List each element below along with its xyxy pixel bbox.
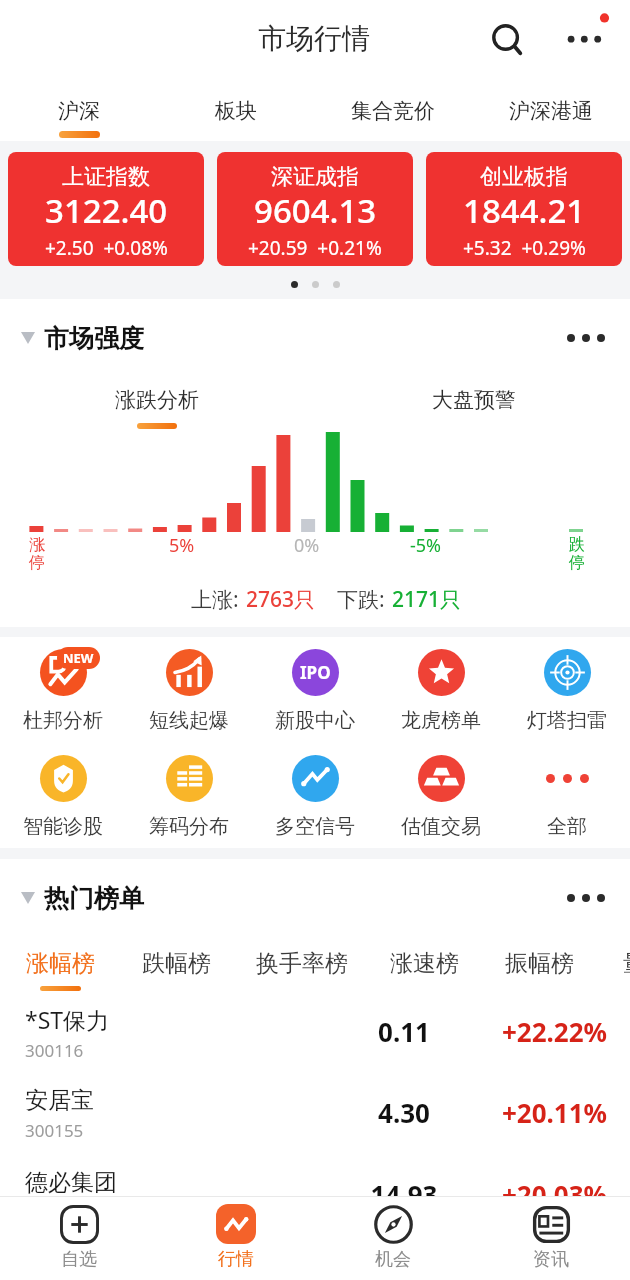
staticText: 市场强度 <box>44 323 144 354</box>
button[interactable]: 沪深港通 <box>472 78 630 141</box>
button[interactable]: 龙虎榜单 <box>378 649 504 733</box>
button[interactable]: 资讯 <box>472 1197 630 1280</box>
button[interactable]: 涨速榜 <box>387 928 462 993</box>
staticText: 涨跌分析 <box>115 387 199 413</box>
staticText: 多空信号 <box>275 814 355 839</box>
button[interactable]: 灯塔扫雷 <box>504 649 630 733</box>
staticText: 大盘预警 <box>432 387 516 413</box>
staticText: 德必集团 <box>25 1168 117 1197</box>
button[interactable]: 量 <box>620 928 630 993</box>
staticText: 行情 <box>218 1248 254 1271</box>
staticText: 跌 停 <box>569 535 585 573</box>
staticText: 沪深 <box>58 98 100 124</box>
button[interactable]: 板块 <box>157 78 314 141</box>
button[interactable]: More options <box>564 316 608 360</box>
staticText: 4.30 <box>339 1095 469 1130</box>
staticText: 0% <box>294 533 320 558</box>
staticText: 资讯 <box>533 1248 569 1271</box>
staticText: 市场行情 <box>258 21 370 56</box>
button[interactable]: 筹码分布 <box>126 755 252 839</box>
button[interactable]: IPO <box>252 649 378 733</box>
staticText: 涨幅榜 <box>26 949 95 978</box>
button[interactable]: 深证成指 <box>217 152 413 266</box>
staticText: 上涨: <box>191 585 239 611</box>
button[interactable]: More <box>550 10 612 66</box>
staticText: 短线起爆 <box>149 708 229 733</box>
button[interactable]: 涨幅榜 <box>23 928 98 993</box>
button[interactable]: 沪深 <box>0 78 157 141</box>
button[interactable]: *ST保力 <box>0 993 630 1073</box>
staticText: 5% <box>169 533 195 558</box>
staticText: 创业板指 <box>480 163 568 191</box>
staticText: 上证指数 <box>62 163 150 191</box>
button[interactable]: More options <box>564 876 608 920</box>
button[interactable]: 德必集团 <box>0 1155 630 1237</box>
staticText: 自选 <box>61 1248 97 1271</box>
staticText: 深证成指 <box>271 163 359 191</box>
staticText: 振幅榜 <box>505 949 574 978</box>
staticText: 2763只 <box>246 585 316 611</box>
button[interactable]: 换手率榜 <box>253 928 351 993</box>
button[interactable]: 多空信号 <box>252 755 378 839</box>
staticText: 9604.13 <box>254 188 377 233</box>
staticText: NEW <box>63 649 94 667</box>
staticText: 全部 <box>547 814 587 839</box>
button[interactable]: 机会 <box>314 1197 472 1280</box>
staticText: 机会 <box>375 1248 411 1271</box>
staticText: 杜邦分析 <box>23 708 103 733</box>
button[interactable]: 集合竞价 <box>314 78 472 141</box>
button[interactable]: NEW <box>0 649 126 733</box>
staticText: 估值交易 <box>401 814 481 839</box>
staticText: 下跌: <box>337 585 385 611</box>
button[interactable]: 短线起爆 <box>126 649 252 733</box>
staticText: 热门榜单 <box>44 883 144 914</box>
staticText: IPO <box>300 661 331 684</box>
staticText: 龙虎榜单 <box>401 708 481 733</box>
staticText: +20.59 +0.21% <box>248 235 382 261</box>
staticText: -5% <box>410 533 442 558</box>
staticText: 涨速榜 <box>390 949 459 978</box>
button[interactable]: 自选 <box>0 1197 157 1280</box>
staticText: 板块 <box>215 98 257 124</box>
staticText: +22.22% <box>455 1014 607 1049</box>
staticText: 300947 <box>25 1201 84 1224</box>
staticText: +20.03% <box>455 1177 607 1212</box>
button[interactable]: Search <box>478 8 534 64</box>
staticText: 14.93 <box>339 1177 469 1212</box>
staticText: 3122.40 <box>45 188 168 233</box>
button[interactable]: 涨跌分析 <box>115 387 199 413</box>
staticText: 智能诊股 <box>23 814 103 839</box>
button[interactable]: 跌幅榜 <box>139 928 214 993</box>
staticText: 沪深港通 <box>509 98 593 124</box>
staticText: +5.32 +0.29% <box>463 235 586 261</box>
staticText: 量 <box>623 949 630 978</box>
staticText: 换手率榜 <box>256 949 348 978</box>
staticText: 300155 <box>25 1119 84 1142</box>
button[interactable]: 创业板指 <box>426 152 622 266</box>
staticText: 涨 停 <box>29 535 45 573</box>
button[interactable]: 全部 <box>504 755 630 839</box>
staticText: 灯塔扫雷 <box>527 708 607 733</box>
staticText: +2.50 +0.08% <box>45 235 168 261</box>
staticText: 跌幅榜 <box>142 949 211 978</box>
staticText: 新股中心 <box>275 708 355 733</box>
button[interactable]: 大盘预警 <box>432 387 516 413</box>
staticText: *ST保力 <box>25 1004 110 1035</box>
button[interactable]: 振幅榜 <box>502 928 577 993</box>
staticText: 安居宝 <box>25 1086 94 1115</box>
button[interactable]: 上证指数 <box>8 152 204 266</box>
button[interactable]: 行情 <box>157 1197 314 1280</box>
staticText: +20.11% <box>455 1095 607 1130</box>
button[interactable]: 估值交易 <box>378 755 504 839</box>
button[interactable]: 智能诊股 <box>0 755 126 839</box>
staticText: 300116 <box>25 1039 84 1062</box>
staticText: 筹码分布 <box>149 814 229 839</box>
staticText: 2171只 <box>392 585 462 611</box>
staticText: 1844.21 <box>463 188 586 233</box>
staticText: 集合竞价 <box>351 98 435 124</box>
staticText: 0.11 <box>339 1014 469 1049</box>
button[interactable]: 安居宝 <box>0 1073 630 1155</box>
